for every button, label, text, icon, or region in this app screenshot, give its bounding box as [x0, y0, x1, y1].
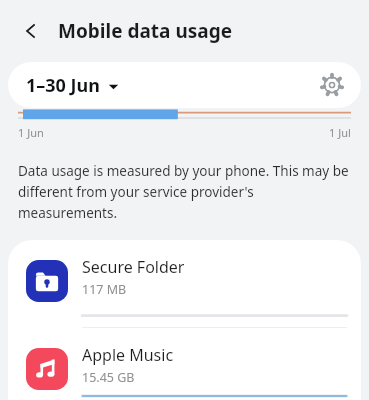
staticText: 1 Jul	[329, 125, 351, 140]
staticText: 117 MB	[82, 281, 127, 298]
staticText: 1–30 Jun	[26, 73, 100, 98]
button[interactable]: 1–30 Jun	[22, 69, 123, 102]
staticText: Apple Music	[82, 344, 174, 366]
staticText: Data usage is measured by your phone. Th…	[18, 162, 349, 222]
button[interactable]: Data usage settings	[315, 68, 349, 102]
staticText: Mobile data usage	[58, 18, 233, 44]
button[interactable]: Back	[14, 14, 48, 48]
staticText: 15.45 GB	[82, 369, 135, 386]
button[interactable]: Secure Folder	[8, 244, 361, 332]
staticText: Secure Folder	[82, 256, 185, 278]
button[interactable]: Apple Music	[8, 332, 361, 400]
staticText: 1 Jun	[18, 125, 44, 140]
